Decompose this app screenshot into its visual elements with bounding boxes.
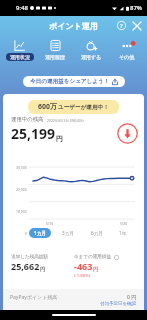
staticText: 30,000: [16, 165, 27, 170]
staticText: ポイント運用: [49, 21, 98, 31]
button[interactable]: Help: [114, 18, 129, 33]
staticText: 5/16: [46, 221, 54, 226]
staticText: 円: [93, 266, 98, 272]
staticText: 0: [25, 231, 27, 236]
staticText: -463: [74, 260, 93, 272]
staticText: 25,662: [11, 260, 40, 272]
staticText: 2022年6月3日 09時40分: [47, 118, 85, 123]
button[interactable]: 6カ月: [86, 228, 108, 238]
button[interactable]: 運用履歴: [37, 35, 73, 65]
button[interactable]: 運用状況: [2, 35, 37, 65]
staticText: PayPayポイント残高: [10, 294, 58, 301]
staticText: 今までの運用損益: [74, 254, 112, 260]
staticText: 10,000: [16, 209, 27, 214]
staticText: 5/30: [120, 221, 128, 226]
staticText: 6カ月: [91, 230, 103, 236]
button[interactable]: 運用する: [73, 35, 109, 65]
staticText: 0 円: [127, 294, 137, 301]
button[interactable]: Close: [129, 18, 144, 33]
staticText: 運用する: [81, 54, 102, 60]
staticText: 1年: [119, 230, 127, 236]
staticText: 1カ月: [34, 230, 46, 236]
staticText: 今日の運用益をシェアしよう！: [30, 78, 110, 85]
button[interactable]: 今日の運用益をシェアしよう！: [23, 76, 125, 87]
staticText: ユーザーが運用中！: [58, 104, 109, 111]
button[interactable]: その他: [109, 35, 145, 65]
staticText: 円: [56, 134, 63, 143]
button[interactable]: 付与予定日を確認: [100, 301, 137, 307]
staticText: その他: [119, 54, 135, 60]
staticText: 円: [40, 266, 45, 272]
staticText: 運用状況: [10, 54, 30, 60]
staticText: 20,000: [16, 187, 27, 192]
button[interactable]: 3カ月: [57, 228, 79, 238]
staticText: 9:48: [16, 4, 28, 12]
staticText: 87%: [130, 4, 142, 12]
staticText: ?: [120, 22, 123, 30]
staticText: 追加した残高総額: [11, 254, 48, 260]
staticText: 運用履歴: [45, 54, 65, 60]
staticText: 25,199: [11, 124, 56, 143]
button[interactable]: 1カ月: [29, 228, 51, 238]
staticText: 600万: [38, 102, 58, 112]
button[interactable]: Withdraw: [117, 123, 138, 144]
staticText: 3カ月: [62, 230, 74, 236]
staticText: (-1.80%): [74, 272, 91, 278]
button[interactable]: 1年: [114, 228, 132, 238]
staticText: 運用中の残高: [11, 116, 44, 123]
